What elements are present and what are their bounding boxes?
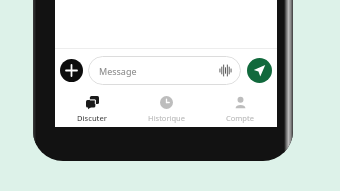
button[interactable]: Add attachment	[60, 59, 83, 82]
button[interactable]: Discuter	[55, 91, 129, 127]
other: Voice input	[219, 65, 232, 76]
staticText: Compte	[226, 113, 254, 123]
button[interactable]: Send	[247, 58, 272, 83]
staticText: Historique	[148, 113, 185, 123]
staticText: Discuter	[77, 113, 107, 123]
staticText: Message	[99, 65, 137, 77]
button[interactable]: Historique	[129, 91, 203, 127]
button[interactable]: Message	[88, 56, 241, 85]
button[interactable]: Compte	[203, 91, 277, 127]
